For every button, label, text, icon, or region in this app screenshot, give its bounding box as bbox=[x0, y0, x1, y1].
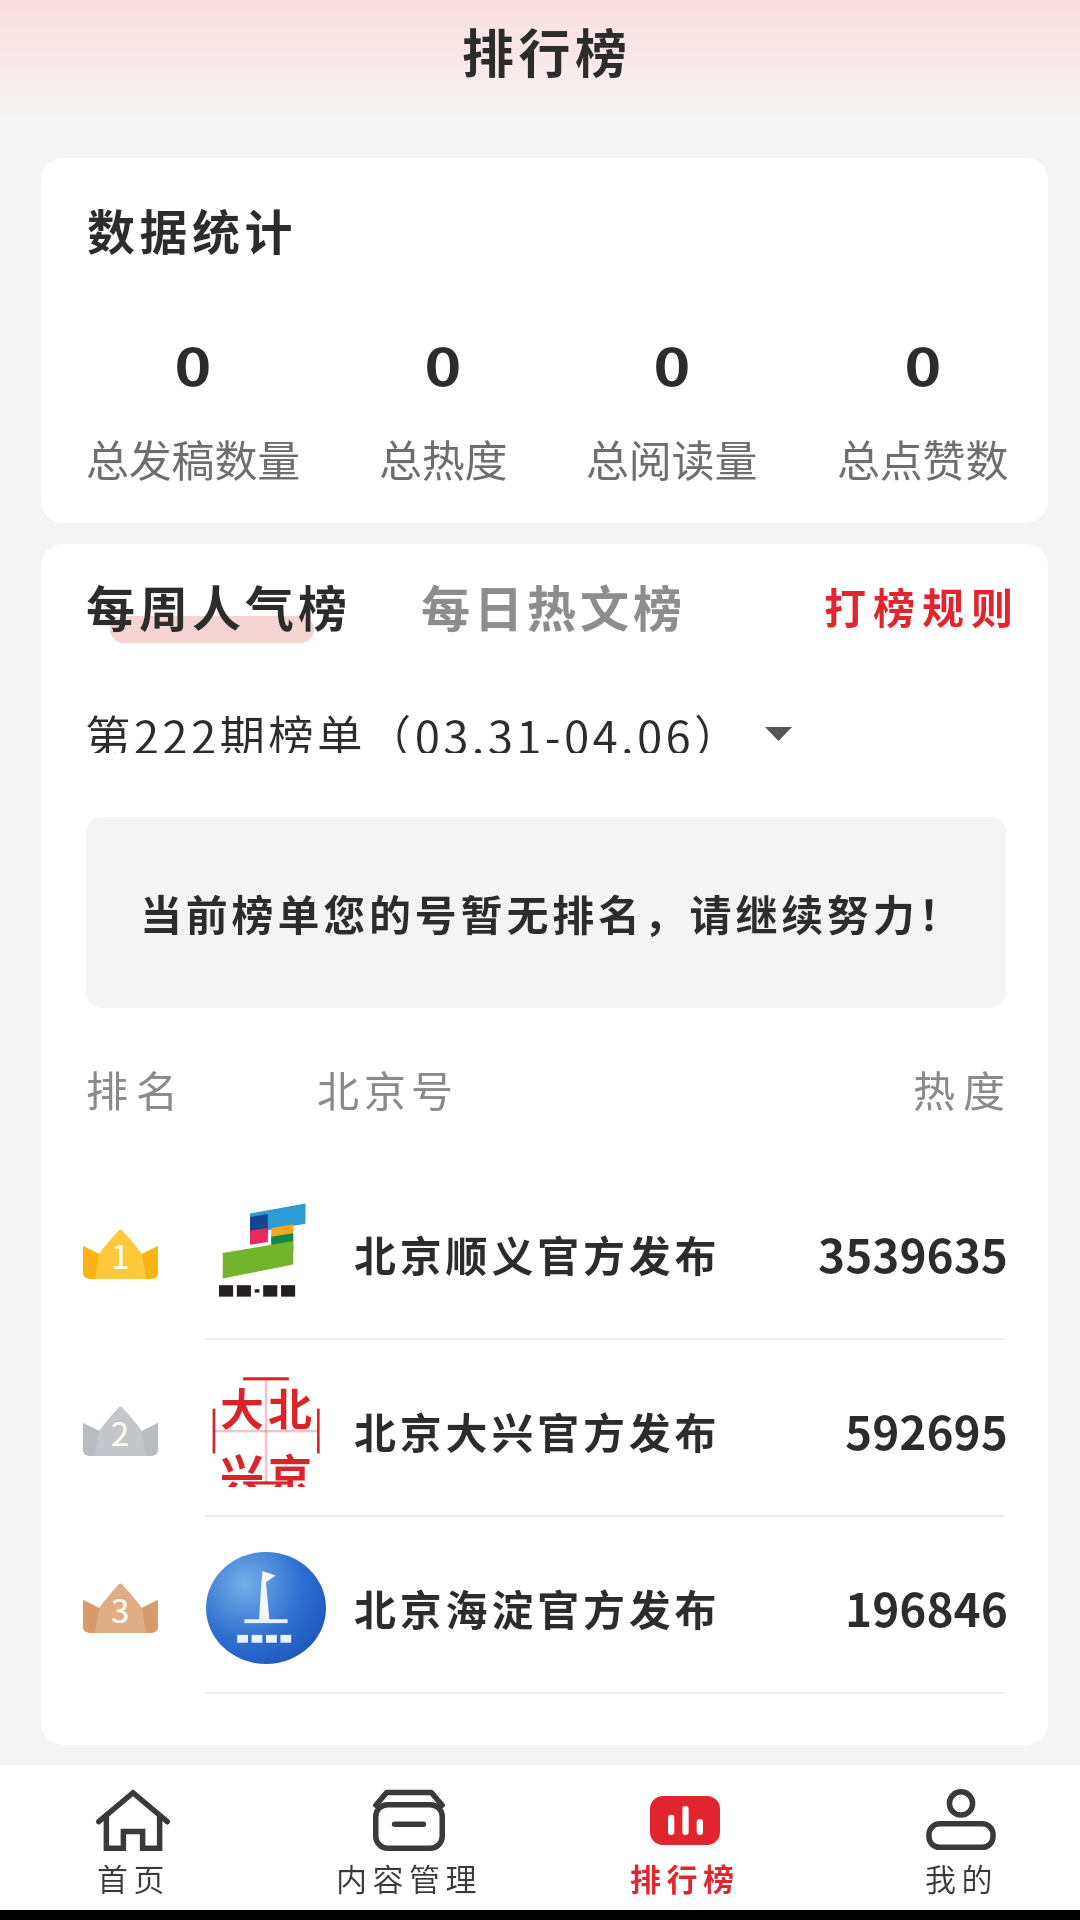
staticText: 数据统计 bbox=[87, 194, 298, 264]
staticText: 每日热文榜 bbox=[421, 570, 687, 641]
button[interactable]: 第222期榜单（03.31-04.06） bbox=[85, 701, 743, 753]
staticText: 0 bbox=[904, 327, 943, 401]
button[interactable]: 我的 bbox=[823, 1765, 1080, 1910]
button[interactable]: 每日热文榜 bbox=[421, 570, 687, 641]
staticText: 0 bbox=[174, 327, 213, 401]
staticText: 北京顺义官方发布 bbox=[354, 1223, 721, 1284]
staticText: 我的 bbox=[925, 1855, 998, 1900]
staticText: 3539635 bbox=[818, 1220, 1008, 1287]
button[interactable]: 首页 bbox=[0, 1765, 271, 1910]
staticText: 592695 bbox=[845, 1397, 1008, 1464]
staticText: 1 bbox=[111, 1231, 130, 1279]
staticText: 0 bbox=[653, 327, 692, 401]
staticText: 排行榜 bbox=[630, 1855, 740, 1900]
staticText: 196846 bbox=[845, 1574, 1008, 1641]
staticText: 排行榜 bbox=[462, 13, 632, 88]
staticText: 热度 bbox=[913, 1058, 1014, 1119]
staticText: 内容管理 bbox=[336, 1855, 482, 1900]
other: 我的 bbox=[925, 1790, 997, 1851]
button[interactable]: 内容管理 bbox=[271, 1765, 547, 1910]
button[interactable]: 排行榜 bbox=[547, 1765, 823, 1910]
staticText: 兴 bbox=[220, 1441, 264, 1487]
staticText: 排名 bbox=[86, 1058, 187, 1119]
staticText: 每周人气榜 bbox=[86, 570, 352, 641]
staticText: 北京海淀官方发布 bbox=[354, 1577, 721, 1638]
button[interactable]: 3 bbox=[41, 1517, 1048, 1692]
staticText: 3 bbox=[111, 1585, 130, 1633]
staticText: 大 bbox=[220, 1375, 264, 1439]
staticText: 总阅读量 bbox=[586, 427, 758, 489]
button[interactable]: 1 bbox=[41, 1163, 1048, 1338]
button[interactable]: 2 bbox=[41, 1340, 1048, 1515]
staticText: 北京大兴官方发布 bbox=[354, 1400, 721, 1461]
staticText: 总发稿数量 bbox=[86, 427, 300, 489]
staticText: 首页 bbox=[97, 1855, 170, 1900]
staticText: 京 bbox=[268, 1441, 312, 1487]
staticText: 总点赞数 bbox=[837, 427, 1009, 489]
button[interactable]: 每周人气榜 bbox=[86, 570, 352, 641]
staticText: 北 bbox=[268, 1375, 312, 1439]
other: 首页 bbox=[96, 1790, 170, 1851]
staticText: 第222期榜单（03.31-04.06） bbox=[85, 701, 743, 753]
staticText: 打榜规则 bbox=[824, 575, 1021, 636]
staticText: 当前榜单您的号暂无排名，请继续努力！ bbox=[140, 882, 965, 943]
staticText: 总热度 bbox=[379, 427, 508, 489]
other: 排行榜 bbox=[650, 1796, 720, 1845]
staticText: 2 bbox=[111, 1408, 130, 1456]
staticText: 北京号 bbox=[317, 1058, 459, 1119]
staticText: 0 bbox=[424, 327, 463, 401]
other: 内容管理 bbox=[373, 1790, 445, 1851]
button[interactable]: 打榜规则 bbox=[824, 575, 1021, 636]
